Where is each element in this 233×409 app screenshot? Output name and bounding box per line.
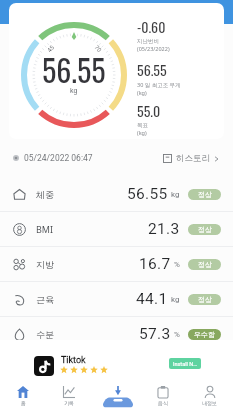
button[interactable]: Records [46, 382, 92, 409]
staticText: kg [70, 87, 78, 95]
staticText: 내정보 [202, 400, 217, 406]
staticText: 30 일 최고조 무게 [137, 81, 181, 89]
staticText: 21.3 [148, 220, 180, 238]
staticText: 05/24/2022 06:47 [24, 153, 93, 163]
staticText: 히스토리 [176, 153, 210, 164]
button[interactable]: 히스토리 [161, 151, 221, 166]
button[interactable]: Install N... [169, 358, 201, 369]
staticText: 근육 [36, 294, 54, 305]
button[interactable]: 체중 [0, 177, 233, 212]
button[interactable]: Measure [92, 382, 139, 409]
staticText: 56.55 [127, 185, 168, 203]
staticText: 홈 [21, 400, 26, 406]
staticText: BMI [36, 223, 54, 235]
staticText: (kg) [137, 89, 147, 96]
staticText: 정상 [198, 295, 212, 304]
staticText: 목표 [137, 122, 148, 129]
staticText: 수분 [36, 329, 54, 340]
button[interactable]: Home [0, 382, 46, 409]
staticText: (05/23/2022) [137, 45, 170, 52]
button[interactable]: Food [139, 382, 186, 409]
staticText: 기록 [64, 400, 74, 406]
staticText: -0.60 [137, 16, 166, 37]
staticText: kg [171, 190, 180, 199]
button[interactable]: 근육 [0, 282, 233, 317]
staticText: 55.0 [137, 100, 161, 121]
staticText: (kg) [137, 129, 147, 136]
staticText: 44.1 [136, 290, 168, 308]
staticText: 음식 [158, 400, 168, 406]
staticText: 16.7 [139, 255, 171, 273]
button[interactable]: BMI [0, 212, 233, 247]
staticText: 지방 [36, 259, 54, 270]
staticText: 57.3 [139, 325, 171, 343]
staticText: 70 [94, 44, 103, 53]
staticText: 체중 [36, 189, 54, 200]
button[interactable]: My info [186, 382, 233, 409]
staticText: 56.55 [137, 59, 167, 80]
staticText: 56.55 [42, 47, 106, 91]
staticText: % [174, 330, 180, 339]
staticText: Tiktok [61, 355, 86, 366]
staticText: 45 [46, 44, 55, 53]
staticText: 지난번비 [137, 38, 159, 45]
staticText: 우수함 [194, 330, 215, 339]
button[interactable]: 수분 [0, 317, 233, 352]
staticText: 정상 [198, 190, 212, 199]
staticText: % [174, 260, 180, 269]
button[interactable]: Tiktok [0, 340, 233, 382]
staticText: Install N... [173, 361, 198, 367]
staticText: kg [171, 295, 180, 304]
staticText: 정상 [198, 260, 212, 269]
button[interactable]: 지방 [0, 247, 233, 282]
staticText: 정상 [198, 225, 212, 234]
